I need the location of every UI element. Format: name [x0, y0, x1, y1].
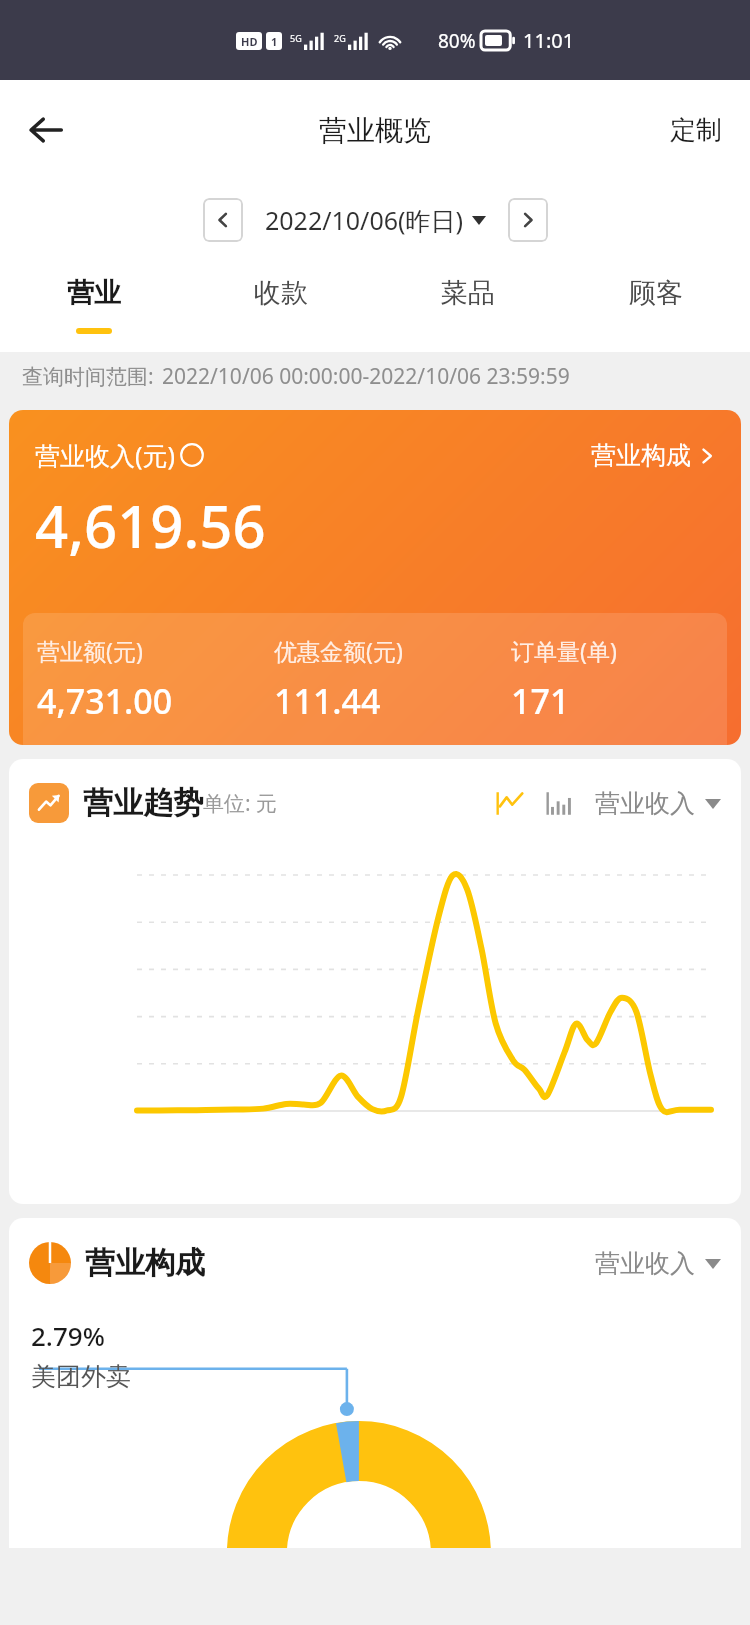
- button[interactable]: 顾客: [562, 260, 750, 352]
- staticText: 菜品: [441, 276, 495, 310]
- button[interactable]: 营业: [0, 260, 187, 352]
- button[interactable]: 菜品: [374, 260, 562, 352]
- staticText: 顾客: [629, 276, 683, 310]
- staticText: 单位: 元: [203, 789, 278, 818]
- staticText: 2022/10/06(昨日): [265, 203, 464, 237]
- staticText: 4,731.00: [37, 678, 173, 724]
- staticText: 5G: [290, 32, 302, 44]
- staticText: 营业构成: [85, 1244, 205, 1282]
- staticText: 2G: [334, 32, 346, 44]
- staticText: 1: [271, 34, 278, 49]
- button[interactable]: 营业构成: [591, 440, 715, 471]
- button[interactable]: Line chart: [493, 786, 527, 820]
- staticText: 11:01: [523, 27, 575, 54]
- staticText: 80%: [438, 28, 476, 54]
- button[interactable]: 营业收入: [595, 788, 721, 819]
- staticText: 111.44: [274, 678, 381, 724]
- staticText: 优惠金额(元): [274, 635, 403, 666]
- staticText: 171: [511, 678, 570, 724]
- staticText: 美团外卖: [31, 1361, 131, 1392]
- button[interactable]: Previous day: [203, 198, 243, 242]
- staticText: 营业趋势: [83, 784, 203, 822]
- button[interactable]: 2022/10/06(昨日): [261, 199, 490, 241]
- staticText: 收款: [254, 276, 308, 310]
- staticText: 营业收入(元): [35, 438, 176, 472]
- staticText: 2022/10/06 00:00:00-2022/10/06 23:59:59: [162, 362, 570, 391]
- button[interactable]: Back: [14, 98, 78, 162]
- button[interactable]: Bar chart: [543, 786, 577, 820]
- button[interactable]: 定制: [650, 100, 742, 161]
- staticText: 营业概览: [319, 113, 431, 148]
- staticText: 订单量(单): [511, 635, 617, 666]
- button[interactable]: 收款: [187, 260, 374, 352]
- button[interactable]: Next day: [508, 198, 548, 242]
- staticText: 2.79%: [31, 1318, 105, 1353]
- staticText: 查询时间范围:: [22, 362, 154, 391]
- staticText: 4,619.56: [35, 486, 266, 565]
- staticText: 营业构成: [591, 440, 691, 471]
- staticText: 营业额(元): [37, 635, 143, 666]
- staticText: 营业收入: [595, 788, 695, 819]
- button[interactable]: 营业收入(元): [9, 410, 741, 745]
- button[interactable]: 营业收入: [595, 1248, 721, 1279]
- staticText: 营业收入: [595, 1248, 695, 1279]
- staticText: HD: [241, 34, 258, 49]
- staticText: 定制: [670, 114, 722, 147]
- staticText: 营业: [67, 276, 121, 310]
